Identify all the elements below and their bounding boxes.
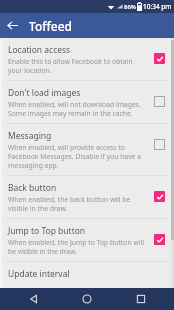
button[interactable]: Jump to Top button [150,230,168,248]
staticText: Back button [8,182,57,194]
button[interactable]: Back button [0,176,174,218]
button[interactable]: Don't load images [0,81,174,123]
button[interactable]: Back button [150,187,168,205]
staticText: When enabled, will provide access to Fac… [8,143,142,170]
button[interactable]: Messaging [150,135,168,153]
button[interactable]: Location access [0,38,174,80]
button[interactable]: Messaging [0,124,174,175]
staticText: Update interval [8,268,70,280]
staticText: Toffeed [29,18,73,34]
staticText: Don't load images [8,87,81,99]
staticText: When enabled, the back button will be vi… [8,195,131,213]
staticText: Jump to Top button [8,225,86,237]
staticText: 10:34 pm [143,2,172,11]
button[interactable]: Back [14,288,54,310]
button[interactable]: Home [67,288,107,310]
staticText: Enable this to allow Facebook to obtain … [8,57,133,75]
staticText: When enabled, will not download images. … [8,100,141,118]
staticText: Location access [8,44,71,56]
button[interactable]: Update interval [0,262,174,288]
staticText: 86% [124,3,136,11]
button[interactable]: Location access [150,49,168,67]
staticText: Messaging [8,130,52,142]
button[interactable]: Recent apps [121,288,161,310]
button[interactable]: Navigate up [0,13,25,38]
staticText: When enabled, the Jump to Top button wil… [8,238,144,256]
button[interactable]: Jump to Top button [0,219,174,261]
button[interactable]: Don't load images [150,92,168,110]
